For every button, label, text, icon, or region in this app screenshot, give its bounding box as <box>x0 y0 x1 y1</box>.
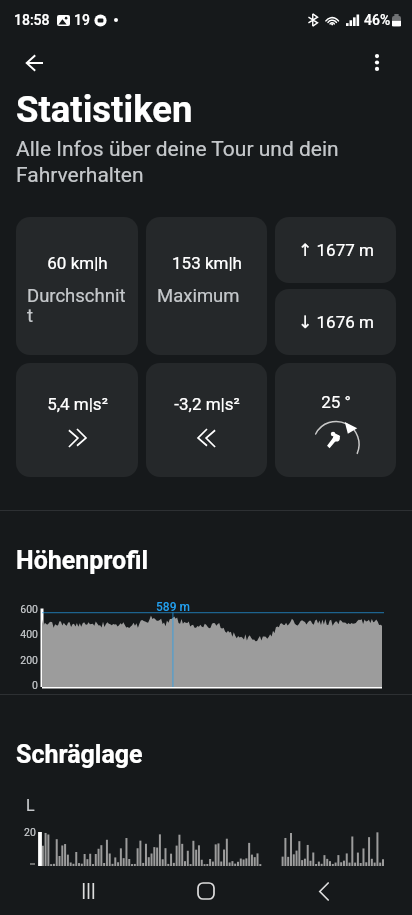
staticText: Statistiken <box>16 88 193 131</box>
staticText: Maximum <box>157 285 256 307</box>
staticText: ↓ 1676 m <box>298 312 374 332</box>
staticText: 600 <box>20 603 38 615</box>
staticText: 0 <box>32 679 38 691</box>
staticText: 400 <box>20 628 38 640</box>
button[interactable]: -3,2 m|s² <box>146 363 267 477</box>
staticText: Höhenprofil <box>16 546 149 575</box>
staticText: L <box>26 796 35 815</box>
staticText: 153 km|h <box>172 253 242 273</box>
staticText: -3,2 m|s² <box>174 394 240 414</box>
button[interactable]: ↓ 1676 m <box>275 289 396 355</box>
staticText: Alle Infos über deine Tour und dein Fahr… <box>16 137 384 187</box>
button[interactable]: ↑ 1677 m <box>275 217 396 283</box>
staticText: 60 km|h <box>47 253 108 273</box>
staticText: 5,4 m|s² <box>47 394 108 414</box>
button[interactable]: 60 km|h <box>16 217 138 355</box>
staticText: 46% <box>364 12 391 28</box>
staticText: Schräglage <box>16 740 143 769</box>
button[interactable]: Recent apps <box>58 867 118 915</box>
button[interactable]: Home <box>176 867 236 915</box>
staticText: 19 <box>74 12 90 28</box>
button[interactable]: Back <box>294 867 354 915</box>
staticText: 589 m <box>156 600 190 614</box>
staticText: ↑ 1677 m <box>298 240 374 260</box>
staticText: 18:58 <box>14 12 50 28</box>
button[interactable]: More options <box>353 40 401 85</box>
staticText: 25 ° <box>321 392 351 412</box>
button[interactable]: Back <box>10 40 58 85</box>
staticText: 20 <box>24 826 36 838</box>
button[interactable]: 25 ° <box>275 363 396 477</box>
staticText: 200 <box>20 654 38 666</box>
button[interactable]: 5,4 m|s² <box>16 363 138 477</box>
staticText: Durchschnitt <box>27 285 127 326</box>
button[interactable]: 153 km|h <box>146 217 267 355</box>
